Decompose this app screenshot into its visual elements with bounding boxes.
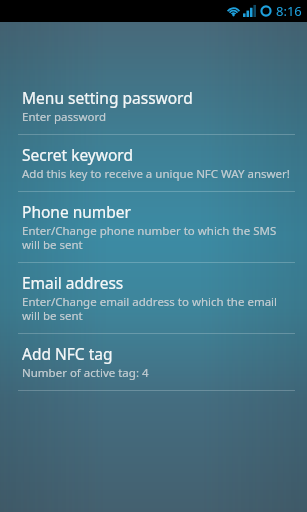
button[interactable]: Menu setting password — [0, 78, 307, 134]
staticText: Add this key to receive a unique NFC WAY… — [22, 166, 290, 182]
staticText: Enter password — [22, 109, 107, 125]
button[interactable]: Secret keyword — [0, 135, 307, 191]
staticText: Secret keyword — [22, 144, 133, 165]
staticText: Enter/Change phone number to which the S… — [22, 223, 293, 253]
button[interactable]: Phone number — [0, 192, 307, 262]
staticText: 8:16 — [276, 2, 302, 20]
staticText: Number of active tag: 4 — [22, 365, 149, 381]
button[interactable]: Email address — [0, 263, 307, 333]
staticText: Add NFC tag — [22, 343, 113, 364]
staticText: Enter/Change email address to which the … — [22, 294, 293, 324]
staticText: Phone number — [22, 201, 132, 222]
staticText: Email address — [22, 272, 124, 293]
staticText: Menu setting password — [22, 87, 193, 108]
button[interactable]: Add NFC tag — [0, 334, 307, 390]
